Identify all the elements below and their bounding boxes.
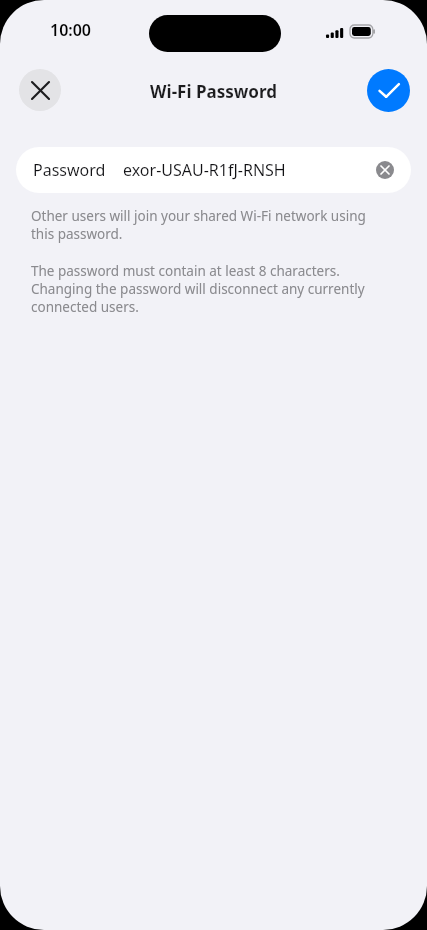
staticText: The password must contain at least 8 cha… [31, 262, 365, 316]
button[interactable]: Password [16, 147, 411, 193]
button[interactable]: Clear text [376, 161, 394, 179]
button[interactable]: Close [19, 69, 61, 111]
staticText: Wi-Fi Password [150, 80, 277, 103]
button[interactable]: Confirm [367, 69, 410, 112]
staticText: 10:00 [50, 19, 92, 41]
staticText: exor-USAU-R1fJ-RNSH [123, 159, 286, 181]
staticText: Other users will join your shared Wi-Fi … [31, 207, 366, 243]
staticText: Password [33, 159, 106, 181]
